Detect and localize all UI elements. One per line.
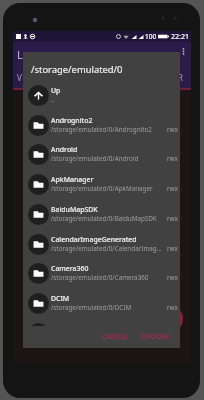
staticText: CANCEL [102,332,129,342]
staticText: /storage/emulated/0/Andrognito2 [51,125,152,134]
staticText: CHOOSE [141,332,170,342]
staticText: CalendarImageGenerated [51,235,137,244]
button[interactable]: CalendarImageGenerated [23,229,180,259]
staticText: Andrognito2 [51,116,93,125]
button[interactable]: Camera360 [23,258,180,288]
staticText: 22:21 [171,32,189,42]
staticText: rwx [167,125,178,134]
button[interactable]: Up [23,80,180,110]
button[interactable]: More options [176,44,190,58]
staticText: rwx [167,214,178,223]
staticText: L [17,47,23,62]
button[interactable]: Android [23,139,180,169]
staticText: .. [51,95,55,104]
staticText: DCIM [51,294,70,303]
staticText: BaiduMapSDK [51,205,98,214]
staticText: /storage/emulated/0/Camera360 [51,273,149,282]
button[interactable]: ApkManager [23,169,180,199]
staticText: rwx [167,244,178,253]
staticText: Camera360 [51,264,89,273]
staticText: V [17,72,22,83]
staticText: Up [51,86,61,95]
button[interactable]: Andrognito2 [23,110,180,140]
staticText: 100 [145,32,157,41]
staticText: /storage/emulated/0/CalendarImag… [51,244,162,253]
staticText: Android [51,145,78,154]
staticText: R [178,72,183,83]
button[interactable]: Add [155,305,183,333]
staticText: /storage/emulated/0/ApkManager [51,184,153,193]
staticText: /storage/emulated/0 [31,63,123,76]
staticText: rwx [167,273,178,282]
staticText: /storage/emulated/0/Android [51,154,139,163]
staticText: rwx [167,154,178,163]
button[interactable]: CHOOSE [135,328,176,346]
staticText: ApkManager [51,175,94,184]
button[interactable]: Download [23,318,180,326]
staticText: rwx [167,184,178,193]
staticText: /storage/emulated/0/DCIM [51,303,132,312]
button[interactable]: CANCEL [96,328,135,346]
button[interactable]: BaiduMapSDK [23,199,180,229]
button[interactable]: DCIM [23,288,180,318]
staticText: rwx [167,303,178,312]
staticText: /storage/emulated/0/BaiduMapSDK [51,214,157,223]
